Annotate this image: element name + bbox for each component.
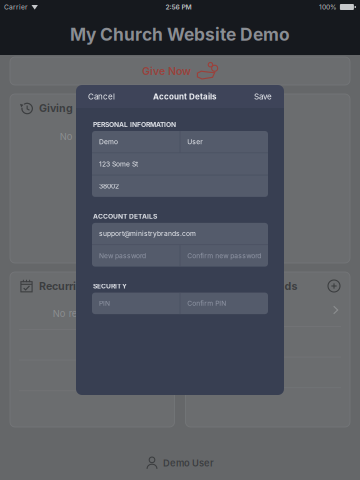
staticText: No gifts found bbox=[60, 131, 125, 142]
staticText: User bbox=[187, 138, 203, 146]
button[interactable]: Give Now bbox=[10, 57, 350, 85]
button[interactable]: Demo User bbox=[10, 446, 350, 480]
staticText: Cancel bbox=[88, 92, 115, 101]
staticText: Demo User bbox=[163, 457, 214, 468]
staticText: support@ministrybrands.com bbox=[99, 230, 196, 238]
button[interactable]: Save bbox=[250, 87, 276, 106]
staticText: Payment Methods bbox=[201, 280, 297, 292]
staticText: Giving History bbox=[39, 102, 115, 114]
staticText: Confirm new password bbox=[187, 252, 261, 260]
staticText: Demo bbox=[99, 138, 118, 146]
staticText: PERSONAL INFORMATION bbox=[93, 121, 176, 128]
staticText: ACCOUNT DETAILS bbox=[93, 212, 157, 220]
button[interactable]: Add payment method bbox=[328, 280, 340, 292]
staticText: My Church Website Demo bbox=[70, 24, 290, 45]
staticText: No recurring gifts bbox=[53, 308, 132, 319]
staticText: 2:56 PM bbox=[165, 3, 191, 11]
staticText: SECURITY bbox=[93, 282, 127, 290]
button[interactable]: Cancel bbox=[84, 87, 119, 106]
staticText: Confirm PIN bbox=[187, 299, 226, 307]
button[interactable]: Payment methods bbox=[185, 300, 350, 320]
staticText: 123 Some St bbox=[99, 160, 138, 168]
staticText: Account Details bbox=[153, 92, 216, 101]
staticText: 38002 bbox=[99, 182, 119, 190]
staticText: Give Now bbox=[142, 65, 191, 77]
staticText: Save bbox=[254, 92, 272, 101]
staticText: New password bbox=[99, 252, 146, 260]
staticText: Recurring Gifts bbox=[39, 280, 118, 292]
staticText: Carrier bbox=[4, 3, 28, 11]
staticText: 100% bbox=[319, 3, 337, 11]
staticText: PIN bbox=[99, 299, 110, 307]
